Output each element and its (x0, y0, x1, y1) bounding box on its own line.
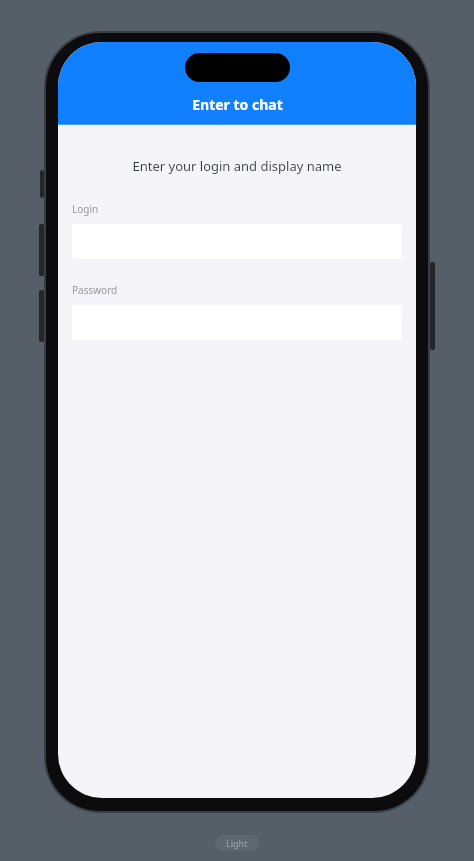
staticText: Enter your login and display name (72, 157, 402, 175)
staticText: Light (226, 837, 248, 849)
staticText: Login (72, 202, 99, 216)
staticText: Enter to chat (192, 95, 283, 114)
button[interactable]: Light (215, 835, 259, 851)
staticText: Password (72, 283, 118, 297)
